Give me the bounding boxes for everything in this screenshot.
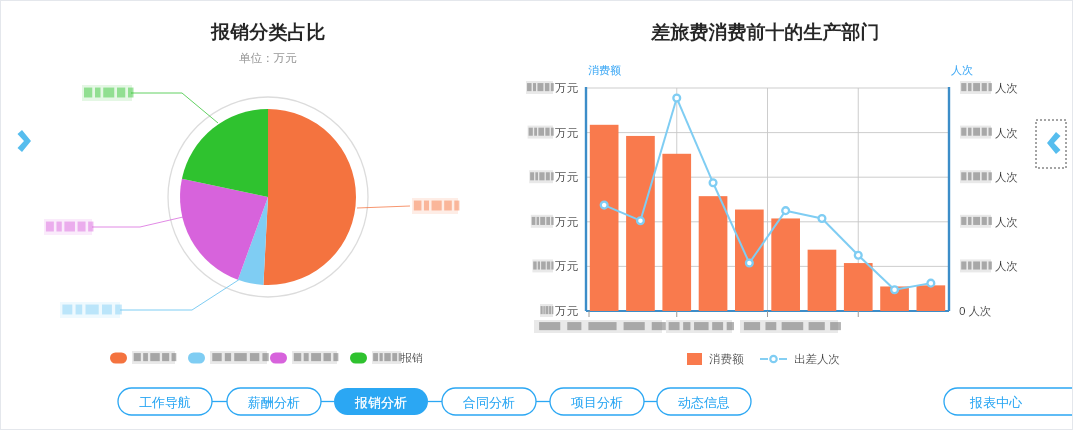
button[interactable] [442,388,536,415]
button[interactable]: Previous page [10,118,42,164]
button[interactable] [944,388,1073,415]
button[interactable] [334,388,428,415]
button[interactable]: Next page [1036,120,1066,168]
button[interactable] [227,388,321,415]
button[interactable] [657,388,751,415]
button[interactable] [118,388,212,415]
button[interactable] [550,388,644,415]
